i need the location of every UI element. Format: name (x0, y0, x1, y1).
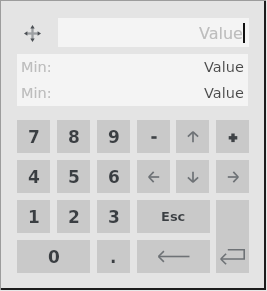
button[interactable]: 6 (97, 160, 130, 193)
button[interactable]: 9 (97, 120, 130, 153)
button[interactable]: Up (176, 120, 209, 153)
button[interactable]: 7 (17, 120, 50, 153)
staticText: Value (199, 24, 243, 43)
staticText: Esc (161, 209, 186, 224)
staticText: Min: (21, 59, 52, 76)
staticText: 5 (68, 167, 80, 187)
staticText: 9 (108, 127, 120, 147)
staticText: Min: (21, 85, 52, 102)
staticText: 4 (28, 167, 40, 187)
button[interactable]: Enter (216, 200, 249, 273)
button[interactable]: Down (176, 160, 209, 193)
button[interactable]: Value (58, 18, 249, 47)
button[interactable]: 4 (17, 160, 50, 193)
button[interactable]: 0 (17, 240, 90, 273)
button[interactable]: . (97, 240, 130, 273)
button[interactable]: Plus (216, 120, 249, 153)
button[interactable]: Backspace (137, 240, 210, 273)
button[interactable]: Esc (137, 200, 210, 233)
button[interactable]: 2 (57, 200, 90, 233)
button[interactable]: 1 (17, 200, 50, 233)
button[interactable]: 3 (97, 200, 130, 233)
staticText: 3 (108, 207, 120, 227)
staticText: 6 (108, 167, 120, 187)
staticText: 1 (28, 207, 40, 227)
button[interactable]: 8 (57, 120, 90, 153)
button[interactable]: Move (18, 19, 46, 47)
button[interactable]: Right (216, 160, 249, 193)
staticText: 0 (48, 247, 60, 267)
button[interactable]: Minus (137, 120, 170, 153)
staticText: . (110, 247, 117, 267)
button[interactable]: 5 (57, 160, 90, 193)
staticText: 7 (28, 127, 40, 147)
staticText: Value (204, 59, 244, 76)
staticText: Value (204, 85, 244, 102)
button[interactable]: Left (137, 160, 170, 193)
staticText: 8 (68, 127, 80, 147)
staticText: 2 (68, 207, 80, 227)
